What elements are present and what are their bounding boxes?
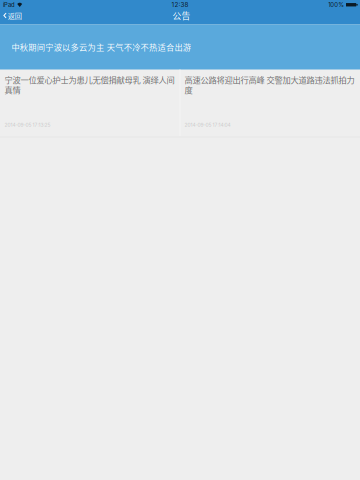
button[interactable]: 中秋期间宁波以多云为主 天气不冷不热适合出游 [0,24,360,69]
staticText: iPad [3,1,15,8]
staticText: 宁波一位爱心护士为患儿无偿捐献母乳 演绎人间真情 [5,74,175,96]
staticText: 100% [328,1,344,8]
button[interactable]: 宁波一位爱心护士为患儿无偿捐献母乳 演绎人间真情 [0,69,179,136]
button[interactable]: 返回 [0,9,26,21]
staticText: 高速公路将迎出行高峰 交警加大道路违法抓拍力度 [184,74,354,96]
staticText: 返回 [8,10,22,21]
staticText: 2014-09-05 17:14:04 [184,122,230,128]
button[interactable]: 高速公路将迎出行高峰 交警加大道路违法抓拍力度 [179,69,360,136]
staticText: 中秋期间宁波以多云为主 天气不冷不热适合出游 [11,41,191,53]
staticText: 12:38 [171,1,188,9]
staticText: 2014-09-05 17:13:25 [5,122,51,128]
staticText: 公告 [172,9,190,22]
